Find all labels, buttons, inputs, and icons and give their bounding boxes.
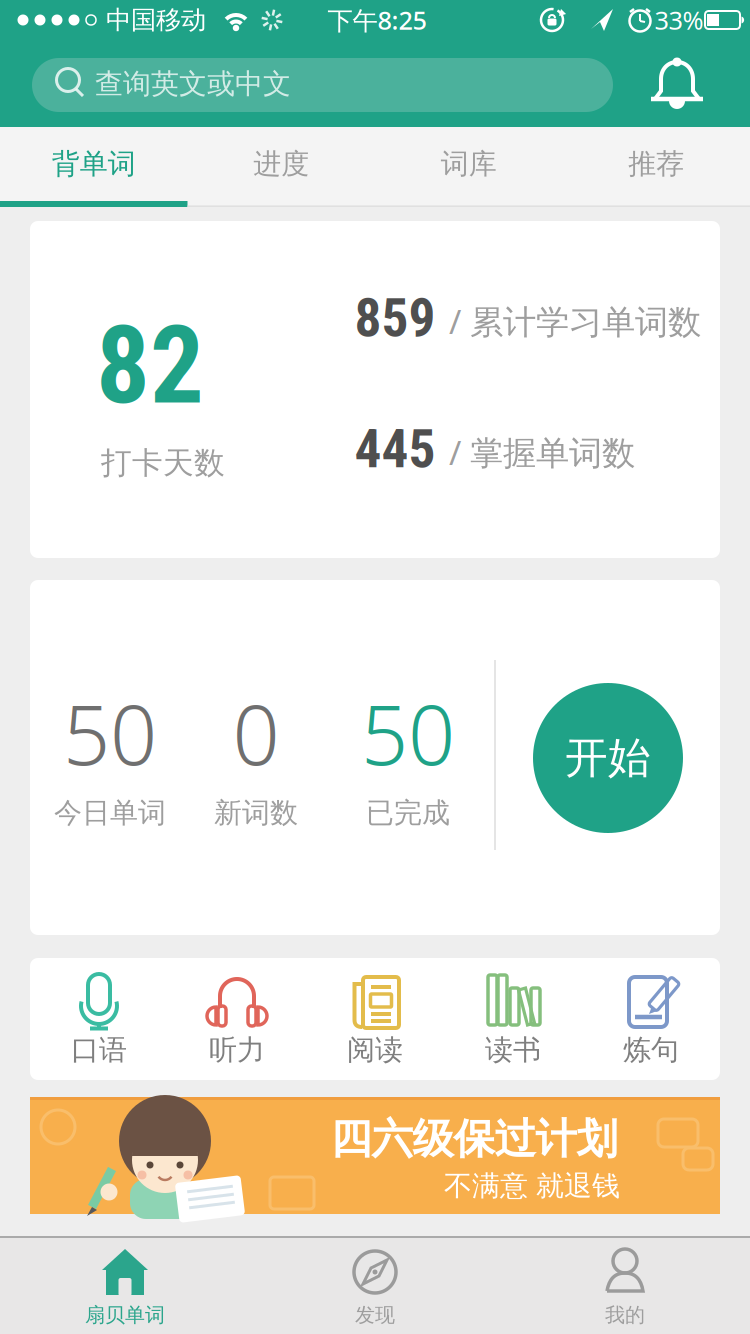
button[interactable]: 背单词: [0, 127, 187, 201]
button[interactable]: 词库: [375, 127, 562, 201]
staticText: / 掌握单词数: [449, 430, 635, 474]
staticText: 炼句: [623, 1033, 679, 1067]
staticText: 口语: [71, 1033, 127, 1067]
staticText: 进度: [253, 147, 309, 181]
staticText: 查询英文或中文: [95, 67, 291, 101]
staticText: 发现: [355, 1303, 395, 1327]
button[interactable]: 查询英文或中文: [32, 58, 613, 112]
staticText: 读书: [485, 1033, 541, 1067]
button[interactable]: 四六级保过计划: [30, 1097, 720, 1214]
button[interactable]: 我的: [500, 1238, 750, 1334]
staticText: 新词数: [214, 796, 298, 830]
staticText: 82: [96, 303, 204, 428]
staticText: 50: [63, 678, 157, 788]
staticText: 阅读: [347, 1033, 403, 1067]
staticText: 背单词: [52, 147, 136, 181]
staticText: 0: [232, 678, 279, 788]
staticText: / 累计学习单词数: [449, 299, 701, 343]
staticText: 下午8:25: [327, 3, 426, 37]
staticText: 不满意 就退钱: [444, 1169, 620, 1203]
button[interactable]: 读书: [448, 958, 578, 1080]
button[interactable]: 炼句: [586, 958, 716, 1080]
button[interactable]: 进度: [187, 127, 375, 201]
button[interactable]: 扇贝单词: [0, 1238, 250, 1334]
button[interactable]: 口语: [34, 958, 164, 1080]
button[interactable]: 听力: [172, 958, 302, 1080]
staticText: 33%: [654, 3, 703, 37]
staticText: 859: [354, 287, 435, 349]
staticText: 开始: [565, 732, 651, 784]
staticText: 我的: [605, 1303, 645, 1327]
button[interactable]: 推荐: [562, 127, 750, 201]
staticText: 中国移动: [106, 4, 206, 35]
staticText: 50: [361, 678, 455, 788]
staticText: 扇贝单词: [85, 1303, 165, 1327]
staticText: 已完成: [366, 796, 450, 830]
staticText: 四六级保过计划: [330, 1114, 617, 1164]
button[interactable]: 发现: [250, 1238, 500, 1334]
staticText: 推荐: [628, 147, 684, 181]
staticText: 词库: [441, 147, 497, 181]
button[interactable]: Notifications: [645, 52, 709, 116]
button[interactable]: 开始: [533, 683, 683, 833]
staticText: 今日单词: [54, 796, 166, 830]
staticText: 听力: [209, 1033, 265, 1067]
staticText: 445: [354, 418, 435, 480]
staticText: 打卡天数: [101, 444, 225, 482]
button[interactable]: 阅读: [310, 958, 440, 1080]
